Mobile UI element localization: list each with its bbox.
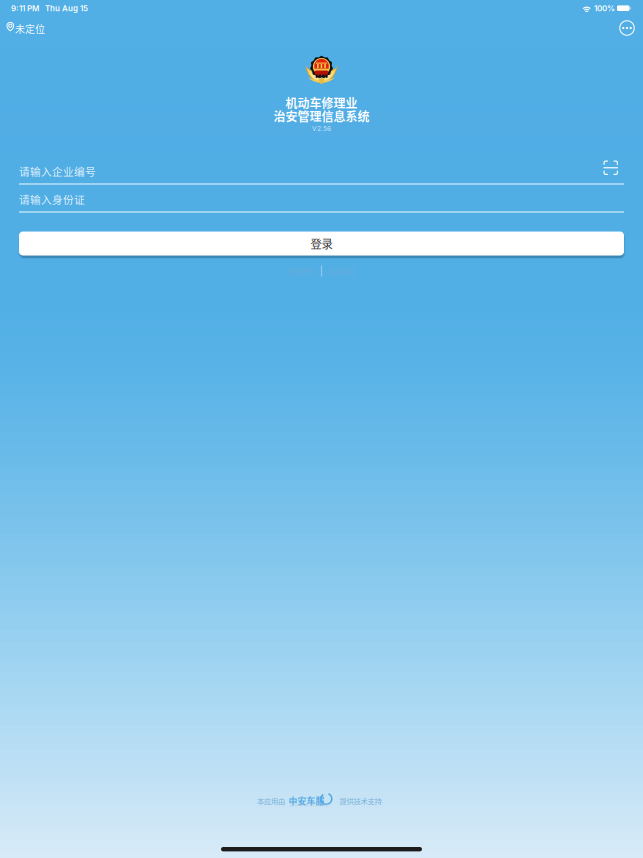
button[interactable]: 登录 [19,231,624,255]
staticText: 100% [594,3,615,13]
button[interactable]: More options [619,20,635,36]
staticText: V2.56 [312,124,331,133]
staticText: 请输入企业编号 [19,163,96,179]
staticText: 使用帮助 [288,266,316,276]
staticText: 本应用由 [257,795,285,806]
staticText: 未定位 [15,21,45,36]
button[interactable]: 使用帮助 [288,266,321,276]
staticText: 治安管理信息系统 [273,107,369,125]
staticText: 机动车修理业 [285,94,357,111]
staticText: ZHONGAN AUTO CARE [289,803,328,807]
staticText: Thu Aug 15 [45,3,88,13]
staticText: 9:11 PM [11,3,39,13]
staticText: 联系客服 [327,266,355,276]
staticText: 请输入身份证 [19,191,85,207]
staticText: 登录 [310,235,332,252]
button[interactable]: Scan QR code [603,160,618,175]
staticText: 中安车服 [288,794,324,807]
button[interactable]: 联系客服 [322,266,355,276]
staticText: 提供技术支持 [339,795,381,806]
